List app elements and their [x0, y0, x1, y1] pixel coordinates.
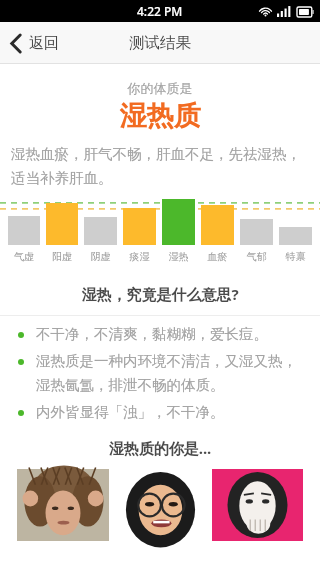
- staticText: 血瘀: [201, 250, 234, 263]
- staticText: 4:22 PM: [137, 3, 183, 19]
- staticText: 湿热质是一种内环境不清洁，又湿又热，湿热氤氲，排泄不畅的体质。: [36, 352, 304, 394]
- staticText: 阴虚: [84, 250, 117, 263]
- staticText: 返回: [29, 34, 59, 53]
- staticText: 气郁: [240, 250, 273, 263]
- staticText: 湿热血瘀，肝气不畅，肝血不足，先祛湿热，适当补养肝血。: [11, 145, 309, 187]
- staticText: 你的体质是: [0, 80, 320, 96]
- button[interactable]: 返回: [0, 22, 73, 64]
- staticText: 湿热质: [0, 99, 320, 133]
- staticText: 痰湿: [123, 250, 156, 263]
- staticText: 湿热，究竟是什么意思?: [0, 284, 320, 304]
- staticText: 阳虚: [46, 250, 78, 263]
- button[interactable]: Photo 2: [115, 469, 206, 541]
- button[interactable]: 不干净，不清爽，黏糊糊，爱长痘。: [0, 325, 320, 343]
- staticText: 测试结果: [129, 33, 191, 53]
- button[interactable]: Photo 3: [212, 469, 303, 541]
- staticText: 气虚: [8, 250, 40, 263]
- button[interactable]: 内外皆显得「浊」，不干净。: [0, 403, 320, 421]
- staticText: 内外皆显得「浊」，不干净。: [36, 403, 225, 421]
- staticText: 特禀: [279, 250, 312, 263]
- button[interactable]: Photo 1: [17, 469, 109, 541]
- staticText: 不干净，不清爽，黏糊糊，爱长痘。: [36, 325, 268, 343]
- staticText: 湿热质的你是...: [0, 438, 320, 458]
- button[interactable]: 湿热质是一种内环境不清洁，又湿又热，湿热氤氲，排泄不畅的体质。: [0, 352, 320, 394]
- staticText: 湿热: [162, 250, 195, 263]
